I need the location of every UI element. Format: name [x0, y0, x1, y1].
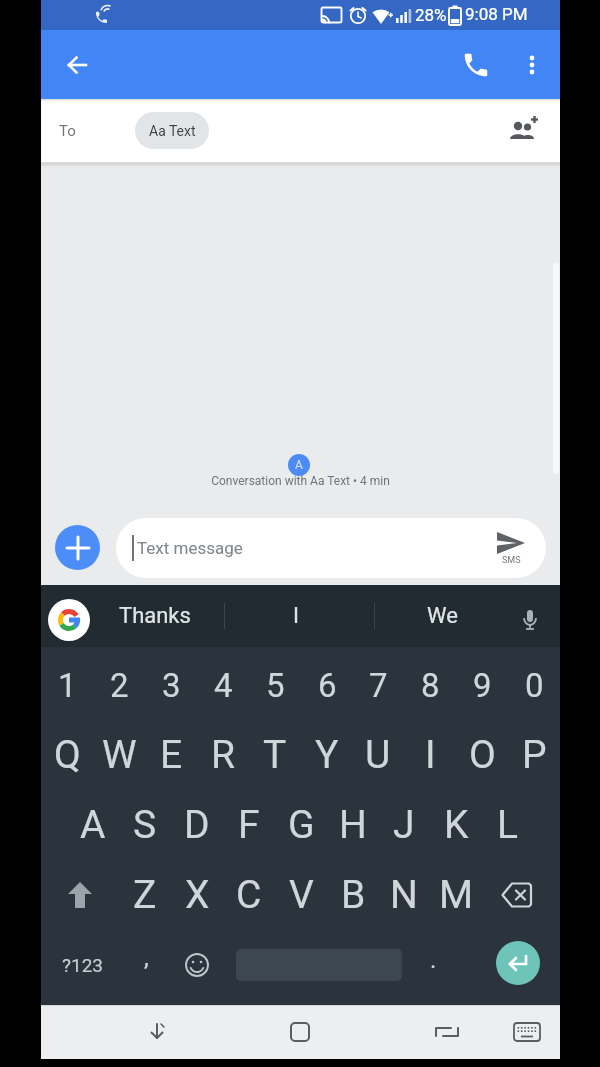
button[interactable]: O: [456, 720, 508, 790]
button[interactable]: 1: [41, 650, 93, 720]
button[interactable]: H: [327, 790, 379, 860]
staticText: G: [288, 802, 315, 848]
staticText: I: [293, 603, 299, 629]
button[interactable]: [507, 115, 539, 147]
staticText: A: [295, 458, 303, 472]
button[interactable]: 0: [508, 650, 560, 720]
staticText: D: [184, 802, 210, 848]
button[interactable]: Q: [41, 720, 93, 790]
button[interactable]: M: [430, 860, 482, 930]
button[interactable]: K: [430, 790, 482, 860]
staticText: 2: [110, 666, 129, 705]
button[interactable]: A: [67, 790, 119, 860]
staticText: 1: [58, 666, 77, 705]
button[interactable]: 6: [301, 650, 353, 720]
button[interactable]: Y: [301, 720, 353, 790]
button[interactable]: Thanks: [119, 597, 191, 635]
staticText: .: [430, 946, 437, 974]
button[interactable]: [55, 525, 100, 570]
button[interactable]: [276, 1008, 324, 1056]
button[interactable]: X: [171, 860, 223, 930]
button[interactable]: [172, 930, 222, 1000]
staticText: To: [59, 122, 76, 140]
staticText: U: [365, 732, 391, 778]
button[interactable]: [512, 45, 552, 85]
button[interactable]: C: [223, 860, 275, 930]
button[interactable]: ,: [121, 930, 171, 1000]
button[interactable]: 5: [249, 650, 301, 720]
button[interactable]: W: [93, 720, 145, 790]
button[interactable]: I: [286, 597, 306, 635]
staticText: Q: [54, 732, 81, 778]
staticText: L: [497, 802, 519, 848]
staticText: M: [439, 872, 474, 918]
staticText: 3: [162, 666, 181, 705]
staticText: O: [469, 732, 496, 778]
button[interactable]: [133, 1008, 181, 1056]
staticText: T: [263, 732, 287, 778]
staticText: C: [236, 872, 262, 918]
button[interactable]: L: [482, 790, 534, 860]
staticText: E: [160, 732, 183, 778]
button[interactable]: 2: [93, 650, 145, 720]
button[interactable]: 4: [197, 650, 249, 720]
button[interactable]: N: [378, 860, 430, 930]
staticText: 8: [421, 666, 440, 705]
button[interactable]: T: [249, 720, 301, 790]
button[interactable]: Z: [119, 860, 171, 930]
button[interactable]: ?123: [49, 930, 117, 1000]
staticText: Y: [315, 732, 339, 778]
staticText: Conversation with Aa Text • 4 min: [41, 474, 560, 488]
button[interactable]: [512, 602, 548, 638]
staticText: W: [102, 732, 137, 778]
button[interactable]: [57, 45, 97, 85]
staticText: P: [522, 732, 547, 778]
staticText: J: [393, 802, 415, 848]
button[interactable]: 7: [352, 650, 404, 720]
button[interactable]: Text message: [116, 518, 546, 578]
button[interactable]: [41, 860, 119, 930]
staticText: B: [341, 872, 366, 918]
staticText: Thanks: [119, 603, 191, 629]
staticText: Z: [133, 872, 157, 918]
button[interactable]: [503, 1008, 551, 1056]
button[interactable]: B: [327, 860, 379, 930]
button[interactable]: D: [171, 790, 223, 860]
staticText: 0: [525, 666, 544, 705]
button[interactable]: J: [378, 790, 430, 860]
button[interactable]: We: [419, 597, 465, 635]
button[interactable]: P: [508, 720, 560, 790]
staticText: H: [339, 802, 367, 848]
button[interactable]: [423, 1008, 471, 1056]
button[interactable]: U: [352, 720, 404, 790]
staticText: N: [390, 872, 418, 918]
button[interactable]: [48, 599, 90, 641]
button[interactable]: 8: [404, 650, 456, 720]
button[interactable]: 9: [456, 650, 508, 720]
button[interactable]: F: [223, 790, 275, 860]
button[interactable]: SMS: [496, 531, 526, 566]
button[interactable]: V: [275, 860, 327, 930]
button[interactable]: E: [145, 720, 197, 790]
button[interactable]: G: [275, 790, 327, 860]
button[interactable]: I: [404, 720, 456, 790]
staticText: ?123: [62, 954, 104, 976]
staticText: ,: [144, 944, 149, 972]
button[interactable]: S: [119, 790, 171, 860]
staticText: 9:08 PM: [465, 4, 528, 24]
button[interactable]: Aa Text: [135, 112, 209, 149]
button[interactable]: [456, 45, 496, 85]
staticText: X: [185, 872, 210, 918]
staticText: V: [289, 872, 314, 918]
button[interactable]: [478, 860, 556, 930]
staticText: 6: [318, 666, 337, 705]
staticText: 7: [369, 666, 388, 705]
button[interactable]: .: [408, 930, 458, 1000]
button[interactable]: R: [197, 720, 249, 790]
staticText: F: [238, 802, 260, 848]
staticText: Text message: [137, 538, 243, 558]
staticText: 9: [473, 666, 492, 705]
button[interactable]: [496, 941, 540, 985]
button[interactable]: 3: [145, 650, 197, 720]
